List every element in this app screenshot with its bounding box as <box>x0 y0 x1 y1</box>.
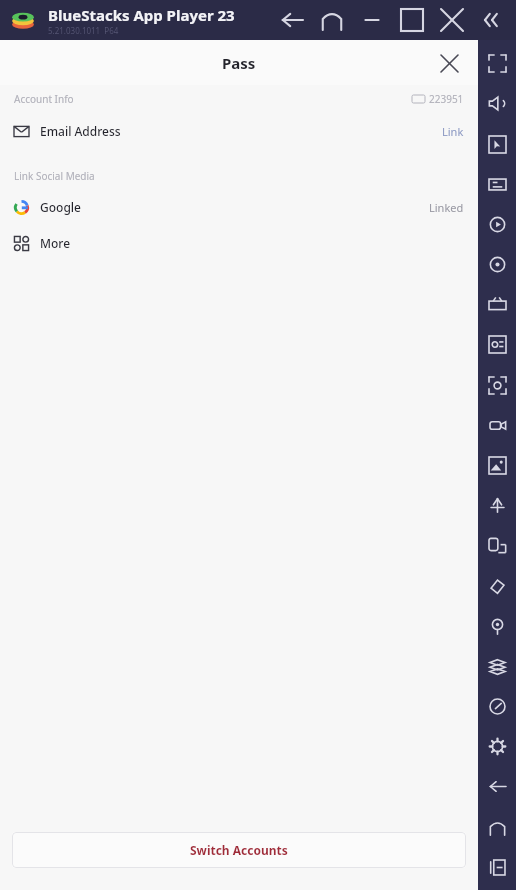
staticText: Link <box>442 124 464 139</box>
button[interactable]: Eco mode <box>480 327 514 361</box>
staticText: Email Address <box>40 123 121 139</box>
button[interactable]: Multi instance <box>480 287 514 321</box>
button[interactable]: Back <box>272 0 312 40</box>
button[interactable]: Record screen <box>480 408 514 442</box>
button[interactable]: Tilt <box>480 569 514 603</box>
button[interactable]: Close <box>434 48 464 78</box>
button[interactable]: Macros <box>480 488 514 522</box>
button[interactable]: Back <box>480 769 514 803</box>
staticText: 223951 <box>429 92 464 106</box>
button[interactable]: Media manager <box>480 448 514 482</box>
staticText: Link Social Media <box>14 169 95 183</box>
staticText: More <box>40 235 71 251</box>
staticText: Google <box>40 199 81 215</box>
button[interactable]: Collapse <box>472 0 512 40</box>
button[interactable]: Maximize <box>392 0 432 40</box>
button[interactable]: Performance <box>480 689 514 723</box>
staticText: Pass <box>222 53 256 73</box>
button[interactable]: Recents <box>480 850 514 884</box>
button[interactable]: Screenshot <box>480 368 514 402</box>
staticText: 5.21.030.1011 P64 <box>48 25 119 36</box>
button[interactable]: Email Address <box>0 113 478 149</box>
button[interactable]: Minimize <box>352 0 392 40</box>
button[interactable]: Location <box>480 609 514 643</box>
button[interactable]: Switch Accounts <box>12 832 466 868</box>
button[interactable]: Macro record <box>480 207 514 241</box>
button[interactable]: Cursor <box>480 127 514 161</box>
staticText: Switch Accounts <box>190 842 288 858</box>
button[interactable]: Settings <box>480 729 514 763</box>
button[interactable]: More <box>0 225 478 261</box>
button[interactable]: Keyboard controls <box>480 167 514 201</box>
button[interactable]: Volume <box>480 86 514 120</box>
button[interactable]: Home <box>480 810 514 844</box>
button[interactable]: Rotate <box>480 247 514 281</box>
button[interactable]: Layers <box>480 649 514 683</box>
staticText: Linked <box>429 200 464 215</box>
staticText: BlueStacks App Player 23 <box>48 5 235 25</box>
button[interactable]: Mobile view <box>480 528 514 562</box>
button[interactable]: Fullscreen <box>480 46 514 80</box>
button[interactable]: Google <box>0 189 478 225</box>
button[interactable]: Close <box>432 0 472 40</box>
staticText: Account Info <box>14 92 74 106</box>
button[interactable]: Home <box>312 0 352 40</box>
